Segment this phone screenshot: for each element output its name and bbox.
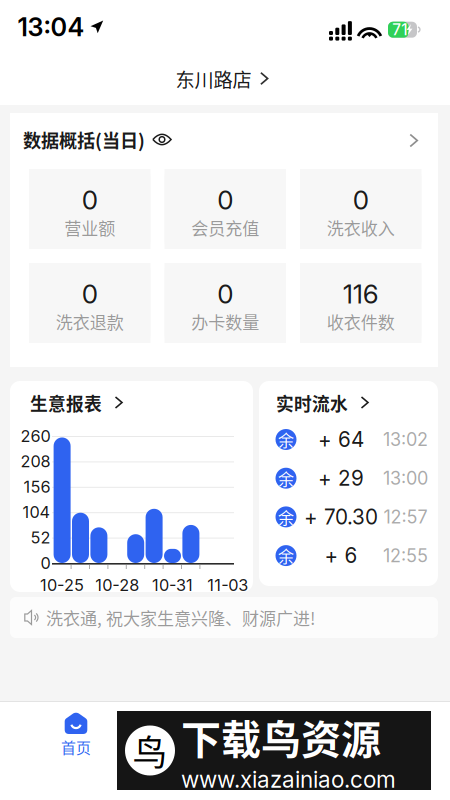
button[interactable]: 余: [259, 536, 438, 575]
staticText: 收衣件数: [327, 309, 395, 334]
staticText: 余: [278, 544, 294, 567]
button[interactable]: 余: [259, 498, 438, 536]
button[interactable]: 首页: [28, 702, 124, 758]
staticText: 数据概括(当日): [23, 126, 145, 153]
staticText: 余: [278, 505, 294, 528]
staticText: 余: [278, 467, 294, 490]
staticText: 余: [278, 428, 294, 451]
staticText: 洗衣收入: [327, 215, 395, 240]
staticText: + 64: [318, 427, 364, 452]
staticText: 12:55: [383, 545, 428, 566]
staticText: 52: [30, 528, 50, 547]
staticText: 260: [20, 426, 50, 446]
staticText: + 29: [318, 466, 364, 491]
staticText: 104: [22, 502, 50, 522]
staticText: 洗衣通, 祝大家生意兴隆、财源广进!: [46, 605, 316, 630]
staticText: 洗衣退款: [56, 309, 124, 334]
button[interactable]: 余: [259, 459, 438, 498]
staticText: 会员充值: [191, 215, 259, 240]
staticText: 鸟: [132, 725, 167, 776]
staticText: 11-03: [207, 575, 248, 595]
button[interactable]: 实时流水: [259, 381, 438, 425]
staticText: www.xiazainiao.com: [181, 766, 396, 793]
staticText: 10-28: [95, 575, 139, 595]
staticText: 实时流水: [276, 390, 348, 416]
staticText: 0: [217, 278, 233, 310]
staticText: 156: [23, 477, 50, 497]
staticText: 0: [353, 184, 369, 216]
staticText: 10-25: [40, 575, 84, 595]
button[interactable]: 余: [259, 420, 438, 459]
staticText: 办卡数量: [191, 309, 259, 334]
staticText: 东川路店: [175, 65, 251, 93]
staticText: + 70.30: [304, 504, 378, 529]
staticText: 0: [82, 184, 98, 216]
staticText: 0: [40, 553, 50, 573]
button[interactable]: 生意报表: [10, 381, 253, 425]
staticText: 71: [392, 20, 407, 39]
staticText: 13:02: [383, 429, 428, 450]
staticText: 13:00: [383, 467, 428, 489]
button[interactable]: 东川路店: [168, 59, 276, 99]
staticText: + 6: [324, 543, 357, 568]
button[interactable]: 数据概括(当日): [23, 118, 172, 161]
staticText: 营业额: [64, 215, 115, 240]
staticText: 生意报表: [30, 390, 102, 416]
button[interactable]: More: [402, 126, 426, 156]
staticText: 0: [82, 278, 98, 310]
staticText: 0: [217, 184, 233, 216]
staticText: 下载鸟资源: [181, 708, 381, 766]
staticText: 208: [20, 452, 50, 471]
staticText: 13:04: [17, 12, 84, 42]
staticText: 首页: [61, 736, 91, 758]
staticText: 10-31: [152, 575, 193, 595]
staticText: 12:57: [383, 506, 427, 528]
staticText: 116: [343, 278, 379, 310]
